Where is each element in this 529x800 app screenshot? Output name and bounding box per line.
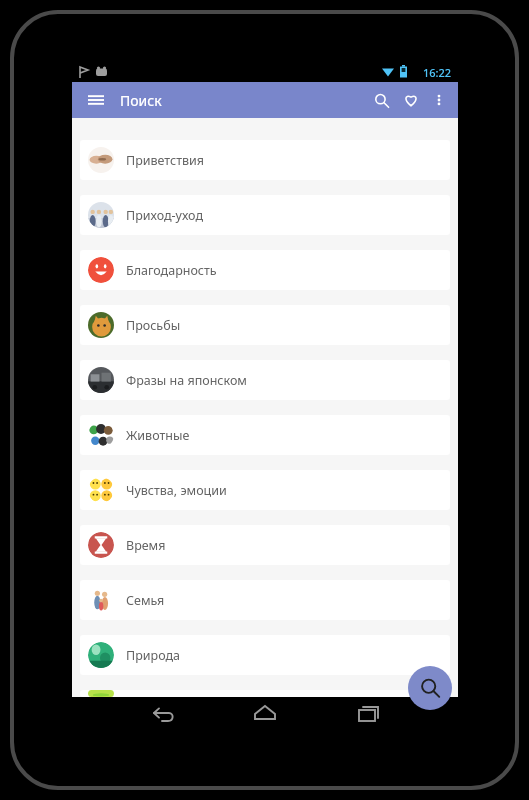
button[interactable]: Search [408,666,452,710]
button[interactable]: Фразы на японском [80,360,450,400]
staticText: 16:22 [423,65,452,80]
button[interactable]: Животные [80,415,450,455]
button[interactable]: Семья [80,580,450,620]
button[interactable]: More options [426,87,452,113]
button[interactable]: Время [80,525,450,565]
staticText: Животные [126,427,190,444]
staticText: Фразы на японском [126,372,247,389]
button[interactable]: Природа [80,635,450,675]
staticText: Приход-уход [126,207,203,224]
button[interactable]: Приход-уход [80,195,450,235]
staticText: Природа [126,647,180,664]
button[interactable]: Благодарность [80,250,450,290]
staticText: Время [126,537,166,554]
staticText: Благодарность [126,262,217,279]
staticText: Поиск [120,91,162,110]
button[interactable] [80,690,450,697]
button[interactable]: Menu [82,86,110,114]
button[interactable]: Search [366,85,396,115]
button[interactable]: Чувства, эмоции [80,470,450,510]
staticText: Приветствия [126,152,205,169]
staticText: Семья [126,592,165,609]
button[interactable]: Приветствия [80,140,450,180]
staticText: Просьбы [126,317,181,334]
button[interactable]: Просьбы [80,305,450,345]
button[interactable]: Favorites [396,85,426,115]
staticText: Чувства, эмоции [126,482,227,499]
